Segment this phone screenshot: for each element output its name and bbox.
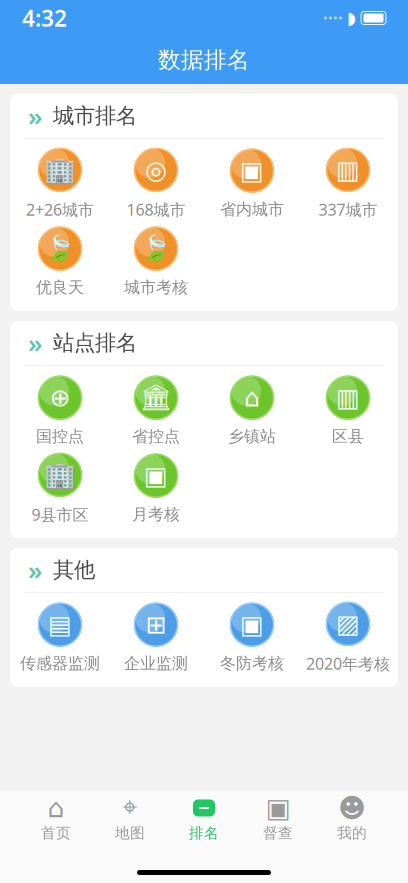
staticText: ▣ — [240, 156, 264, 185]
staticText: 🍃 — [44, 234, 76, 263]
staticText: » — [28, 326, 43, 360]
staticText: 🏢 — [44, 155, 76, 184]
staticText: 月考核 — [132, 505, 180, 524]
staticText: 省控点 — [132, 427, 180, 446]
staticText: ◎ — [145, 155, 167, 184]
staticText: ⌂ — [47, 793, 64, 823]
button[interactable]: 🏢 — [12, 450, 108, 528]
button[interactable]: ⊕ — [12, 372, 108, 450]
button[interactable]: 排名 — [167, 795, 241, 843]
staticText: ▨ — [336, 609, 360, 638]
staticText: 企业监测 — [124, 654, 188, 673]
staticText: 地图 — [115, 824, 145, 842]
staticText: 站点排名 — [53, 330, 137, 356]
staticText: 区县 — [332, 427, 364, 446]
staticText: 国控点 — [36, 427, 84, 446]
staticText: ⊞ — [145, 610, 166, 639]
staticText: ⌂ — [244, 383, 260, 412]
staticText: 省内城市 — [220, 200, 284, 219]
staticText: ▥ — [336, 383, 360, 412]
staticText: ⊕ — [49, 383, 70, 412]
staticText: ▤ — [48, 610, 72, 639]
button[interactable]: ⌂ — [19, 795, 93, 843]
staticText: ▥ — [336, 155, 360, 184]
staticText: ▣ — [240, 610, 264, 639]
staticText: 城市考核 — [124, 278, 188, 297]
staticText: ▣ — [265, 793, 290, 823]
button[interactable]: 🏢 — [12, 145, 108, 223]
staticText: 传感器监测 — [20, 654, 100, 673]
staticText: 168城市 — [126, 199, 185, 220]
staticText: 🍃 — [140, 234, 172, 263]
button[interactable]: ▣ — [204, 599, 300, 677]
staticText: 337城市 — [318, 199, 377, 220]
staticText: 城市排名 — [53, 103, 137, 129]
staticText: 数据排名 — [158, 46, 250, 74]
staticText: 其他 — [53, 557, 95, 583]
staticText: » — [28, 553, 43, 587]
staticText: 2020年考核 — [306, 653, 390, 674]
button[interactable]: ▤ — [12, 599, 108, 677]
button[interactable]: ⊞ — [108, 599, 204, 677]
staticText: 我的 — [337, 824, 367, 842]
button[interactable]: ▣ — [204, 145, 300, 223]
staticText: » — [28, 99, 43, 133]
button[interactable]: ▣ — [241, 795, 315, 843]
staticText: ☻ — [338, 793, 366, 823]
staticText: 首页 — [41, 824, 71, 842]
staticText: 2+26城市 — [26, 199, 94, 220]
staticText: ◗ — [347, 8, 356, 28]
button[interactable]: ▥ — [300, 145, 396, 223]
button[interactable]: 🍃 — [12, 223, 108, 301]
staticText: 4:32 — [22, 3, 67, 33]
staticText: 🏛 — [140, 383, 172, 412]
staticText: 优良天 — [36, 278, 84, 297]
staticText: 冬防考核 — [220, 654, 284, 673]
button[interactable]: 🏛 — [108, 372, 204, 450]
staticText: 乡镇站 — [228, 427, 276, 446]
button[interactable]: ▨ — [300, 599, 396, 677]
button[interactable]: 🍃 — [108, 223, 204, 301]
button[interactable]: ◎ — [108, 145, 204, 223]
button[interactable]: ⌖ — [93, 795, 167, 843]
staticText: 9县市区 — [31, 504, 88, 525]
button[interactable]: ▣ — [108, 450, 204, 528]
staticText: 排名 — [189, 824, 219, 842]
button[interactable]: ▥ — [300, 372, 396, 450]
button[interactable]: ☻ — [315, 795, 389, 843]
staticText: ⌖ — [122, 795, 137, 821]
staticText: ▣ — [144, 461, 168, 490]
button[interactable]: ⌂ — [204, 372, 300, 450]
staticText: 🏢 — [44, 460, 76, 489]
staticText: 督查 — [263, 824, 293, 842]
